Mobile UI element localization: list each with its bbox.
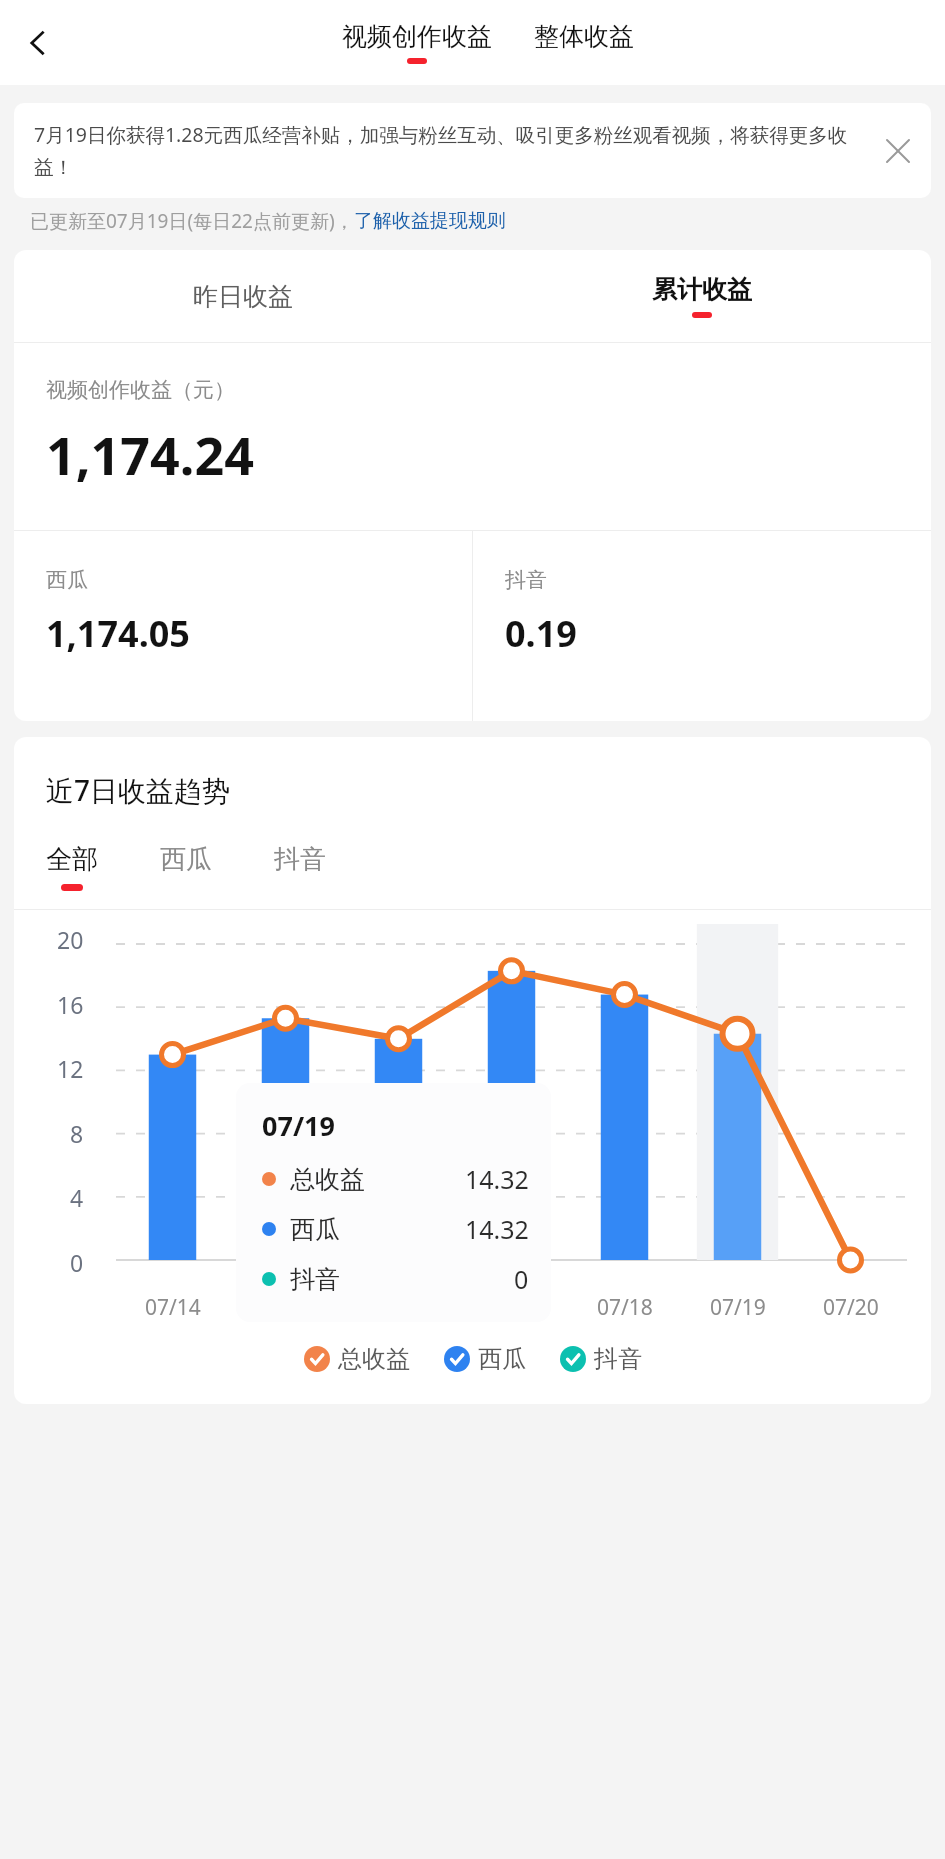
button[interactable]: 视频创作收益: [342, 21, 492, 64]
staticText: 总收益: [290, 1164, 365, 1195]
staticText: 抖音: [505, 567, 547, 593]
staticText: 全部: [46, 843, 98, 876]
staticText: 4: [70, 1182, 84, 1213]
staticText: 12: [57, 1053, 84, 1084]
staticText: 西瓜: [290, 1214, 340, 1245]
staticText: 整体收益: [534, 21, 634, 52]
staticText: 近7日收益趋势: [46, 771, 231, 809]
staticText: 16: [57, 989, 84, 1020]
button[interactable]: Close: [871, 124, 925, 178]
staticText: 西瓜: [160, 843, 212, 876]
staticText: 视频创作收益: [342, 21, 492, 52]
button[interactable]: 整体收益: [534, 21, 634, 52]
staticText: 西瓜: [478, 1344, 526, 1374]
staticText: 0.19: [505, 609, 577, 658]
staticText: 抖音: [274, 843, 326, 876]
staticText: 已更新至07月19日(每日22点前更新)，: [30, 208, 354, 234]
staticText: 8: [70, 1118, 84, 1149]
button[interactable]: 抖音: [560, 1344, 642, 1374]
staticText: 视频创作收益（元）: [46, 377, 235, 403]
staticText: 20: [57, 924, 84, 955]
staticText: 07/18: [597, 1293, 653, 1322]
staticText: 14.32: [465, 1162, 529, 1196]
staticText: 07/14: [145, 1293, 201, 1322]
button[interactable]: 累计收益: [472, 250, 931, 342]
staticText: 1,174.24: [46, 419, 254, 490]
staticText: 7月19日你获得1.28元西瓜经营补贴，加强与粉丝互动、吸引更多粉丝观看视频，将…: [34, 121, 871, 180]
button[interactable]: Back: [10, 15, 66, 71]
button[interactable]: 了解收益提现规则: [354, 209, 506, 233]
button[interactable]: 西瓜: [444, 1344, 526, 1374]
staticText: 0: [514, 1262, 529, 1296]
staticText: 昨日收益: [193, 281, 293, 312]
button[interactable]: 抖音: [274, 843, 326, 891]
staticText: 西瓜: [46, 567, 88, 593]
button[interactable]: 昨日收益: [14, 250, 472, 342]
button[interactable]: 西瓜: [160, 843, 212, 891]
staticText: 抖音: [594, 1344, 642, 1374]
staticText: 1,174.05: [46, 609, 190, 658]
button[interactable]: 总收益: [304, 1344, 410, 1374]
staticText: 07/19: [262, 1107, 335, 1144]
staticText: 14.32: [465, 1212, 529, 1246]
staticText: 累计收益: [652, 274, 752, 305]
staticText: 07/19: [710, 1293, 766, 1322]
button[interactable]: 全部: [46, 843, 98, 891]
staticText: 0: [70, 1247, 84, 1278]
staticText: 总收益: [338, 1344, 410, 1374]
staticText: 07/20: [823, 1293, 879, 1322]
staticText: 抖音: [290, 1264, 340, 1295]
